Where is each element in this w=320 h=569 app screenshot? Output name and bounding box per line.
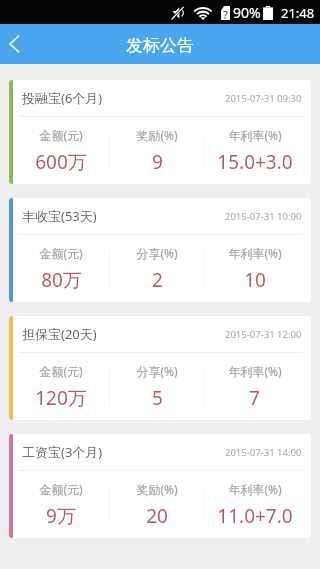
- staticText: 发标公告: [126, 35, 194, 56]
- staticText: 7: [249, 385, 260, 411]
- staticText: 分享(%): [136, 363, 178, 379]
- staticText: 金额(元): [39, 127, 83, 143]
- button[interactable]: 投融宝(6个月): [9, 80, 311, 184]
- staticText: 2015-07-31 14:00: [225, 446, 302, 459]
- staticText: 年利率(%): [228, 481, 282, 497]
- staticText: 5: [152, 385, 163, 411]
- button[interactable]: 担保宝(20天): [9, 316, 311, 420]
- staticText: 投融宝(6个月): [22, 89, 103, 107]
- staticText: 工资宝(3个月): [22, 443, 103, 461]
- button[interactable]: 丰收宝(53天): [9, 198, 311, 302]
- staticText: 120万: [35, 385, 87, 411]
- staticText: 2: [152, 267, 163, 293]
- staticText: 600万: [35, 149, 87, 175]
- staticText: 担保宝(20天): [22, 325, 97, 343]
- staticText: 2015-07-31 09:30: [225, 92, 302, 105]
- staticText: 11.0+7.0: [217, 503, 293, 529]
- staticText: 21:48: [281, 4, 315, 22]
- staticText: 80万: [41, 267, 82, 293]
- staticText: 90%: [233, 3, 261, 22]
- staticText: ?: [223, 7, 228, 21]
- staticText: 奖励(%): [136, 481, 178, 497]
- staticText: 金额(元): [39, 363, 83, 379]
- staticText: 分享(%): [136, 245, 178, 261]
- button[interactable]: 工资宝(3个月): [9, 434, 311, 538]
- staticText: 2015-07-31 12:00: [225, 328, 302, 341]
- staticText: 2015-07-31 10:00: [225, 210, 302, 223]
- staticText: 金额(元): [39, 245, 83, 261]
- staticText: 年利率(%): [228, 363, 282, 379]
- staticText: 20: [146, 503, 168, 529]
- staticText: 奖励(%): [136, 127, 178, 143]
- staticText: 9: [152, 149, 163, 175]
- staticText: 丰收宝(53天): [22, 207, 97, 225]
- staticText: 年利率(%): [228, 245, 282, 261]
- staticText: 15.0+3.0: [217, 149, 293, 175]
- button[interactable]: Back: [0, 24, 40, 64]
- staticText: 10: [244, 267, 266, 293]
- staticText: 金额(元): [39, 481, 83, 497]
- staticText: 9万: [46, 503, 76, 529]
- staticText: 年利率(%): [228, 127, 282, 143]
